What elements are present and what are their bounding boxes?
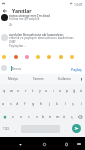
button[interactable]: j (45, 97, 53, 110)
staticText: p (66, 88, 69, 93)
staticText: b (42, 114, 45, 119)
button[interactable]: i (77, 97, 85, 110)
staticText: n (49, 114, 52, 119)
button[interactable]: Emoji (36, 55, 40, 59)
button[interactable]: Emoji (25, 55, 29, 59)
button[interactable]: Emoji (47, 55, 51, 59)
button[interactable]: Back (15, 139, 25, 149)
button[interactable]: e (15, 84, 22, 97)
button[interactable]: w (8, 84, 15, 97)
staticText: w (10, 88, 13, 93)
button[interactable]: Emoji (2, 55, 6, 59)
staticText: ü (80, 88, 83, 93)
button[interactable]: Tamam (25, 74, 51, 84)
button[interactable]: a (0, 97, 7, 110)
button[interactable]: t (29, 84, 36, 97)
staticText: etkinlik ve paylaşım abonushouss kazandı… (9, 36, 75, 40)
button[interactable]: , (12, 125, 19, 133)
staticText: 13:07 (74, 2, 83, 6)
button[interactable]: Back (1, 7, 8, 14)
staticText: i (81, 101, 82, 106)
button[interactable]: Medya (0, 74, 25, 84)
staticText: l (65, 101, 66, 106)
staticText: OMF (9, 40, 16, 44)
button[interactable]: Backspace (75, 110, 85, 123)
button[interactable]: ?123 (1, 125, 11, 133)
staticText: j (49, 101, 50, 106)
staticText: nanca strange mm I'm dead (9, 14, 50, 18)
staticText: f (24, 101, 26, 106)
staticText: m (56, 114, 60, 119)
button[interactable]: Hide keyboard (74, 139, 84, 149)
button[interactable]: p (64, 84, 71, 97)
staticText: Bonus (12, 67, 22, 71)
staticText: t (32, 88, 34, 93)
button[interactable]: Home (39, 139, 49, 149)
button[interactable]: u (43, 84, 50, 97)
staticText: Paylaşılan... (9, 44, 26, 48)
staticText: ş (72, 101, 74, 106)
button[interactable]: g (29, 97, 37, 110)
button[interactable]: Kullanan (51, 74, 77, 84)
staticText: Yanıtlar (12, 8, 32, 15)
button[interactable]: Paylaş (70, 65, 83, 74)
button[interactable]: ı (50, 84, 57, 97)
staticText: Follow me @FoolphiE (9, 17, 40, 21)
staticText: ğ (73, 88, 76, 93)
button[interactable]: Emoji (59, 55, 63, 59)
staticText: x (20, 114, 22, 119)
staticText: d (16, 101, 19, 106)
button[interactable]: m (54, 110, 61, 123)
staticText: Kullanan (58, 77, 71, 81)
staticText: ö (63, 114, 66, 119)
button[interactable]: y (36, 84, 43, 97)
button[interactable]: ş (69, 97, 77, 110)
button[interactable]: q (0, 84, 8, 97)
staticText: Paylaş (71, 67, 82, 72)
button[interactable]: Voice input (77, 74, 85, 84)
staticText: Medya (8, 77, 18, 81)
button[interactable]: o (57, 84, 64, 97)
button[interactable]: v (33, 110, 40, 123)
staticText: ?123 (3, 127, 9, 131)
staticText: ı (53, 88, 54, 93)
button[interactable]: b (40, 110, 47, 123)
staticText: c (28, 114, 30, 119)
button[interactable]: f (21, 97, 29, 110)
staticText: s (10, 101, 12, 106)
staticText: a (2, 101, 5, 106)
staticText: acerkilen Bonushouse abi kazandıran, (9, 33, 65, 37)
staticText: 2h (9, 23, 13, 27)
staticText: Tamam (33, 77, 44, 81)
button[interactable]: c (25, 110, 33, 123)
button[interactable]: d (14, 97, 21, 110)
staticText: o (59, 88, 62, 93)
button[interactable]: r (22, 84, 29, 97)
button[interactable]: ğ (71, 84, 78, 97)
button[interactable]: h (37, 97, 45, 110)
staticText: u (45, 88, 48, 93)
staticText: z (12, 114, 14, 119)
button[interactable]: x (17, 110, 25, 123)
button[interactable]: k (53, 97, 61, 110)
button[interactable]: s (7, 97, 14, 110)
button[interactable]: ç (68, 110, 75, 123)
button[interactable]: z (9, 110, 17, 123)
button[interactable]: Send (72, 124, 81, 133)
staticText: v (36, 114, 38, 119)
button[interactable]: ö (61, 110, 68, 123)
staticText: g (32, 101, 35, 106)
button[interactable]: n (47, 110, 54, 123)
button[interactable]: Emoji (14, 55, 18, 59)
button[interactable]: l (61, 97, 69, 110)
button[interactable]: ü (78, 84, 85, 97)
staticText: e (17, 88, 20, 93)
button[interactable]: Emoji (70, 55, 74, 59)
button[interactable]: Shift (0, 110, 9, 123)
button[interactable]: Recent apps (61, 139, 71, 149)
staticText: r (25, 88, 27, 93)
staticText: h (40, 101, 43, 106)
